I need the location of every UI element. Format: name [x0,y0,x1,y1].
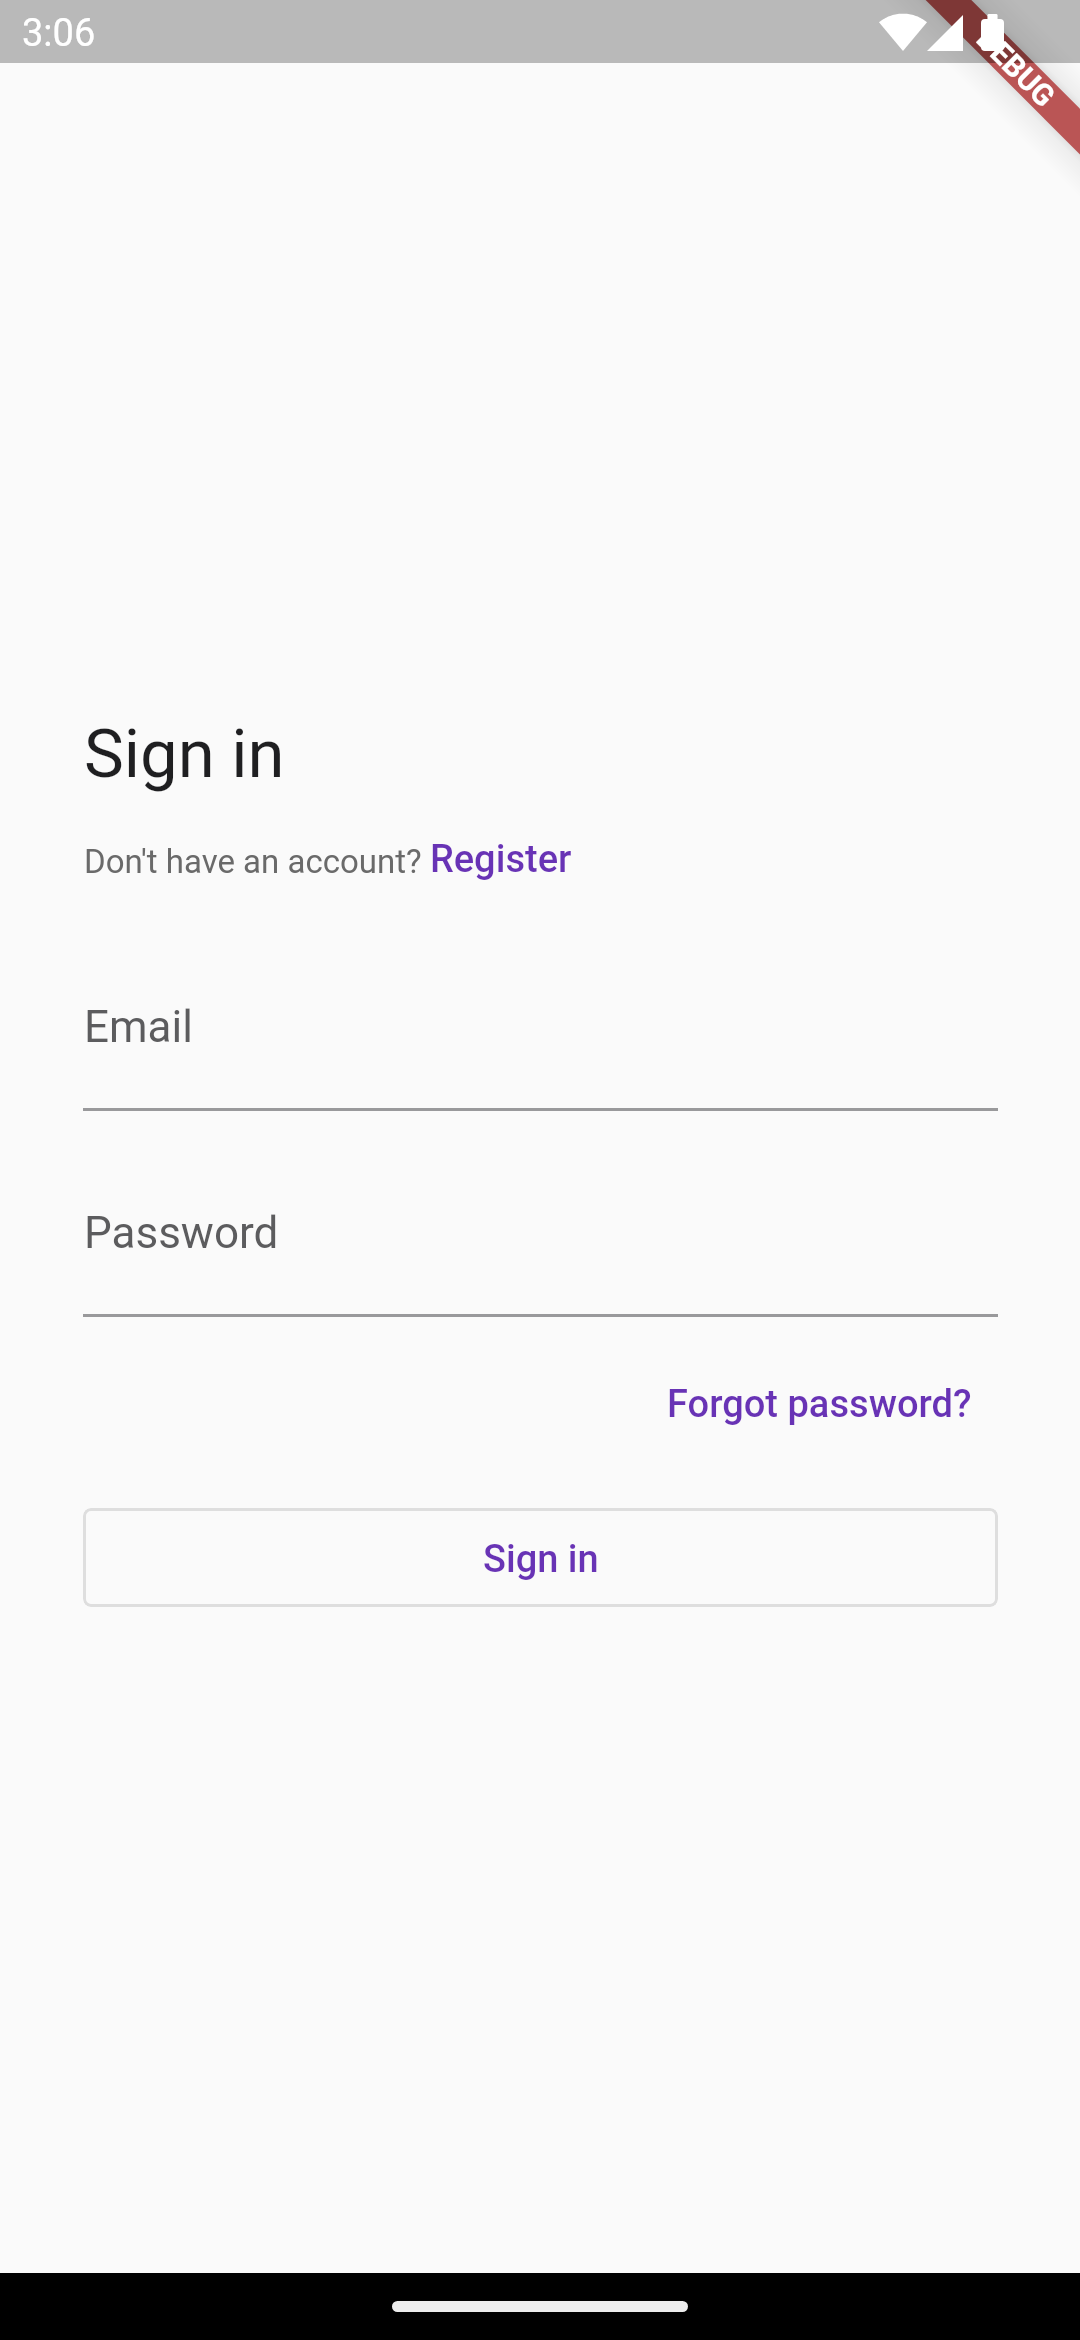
staticText: Sign in [84,715,285,794]
staticText: 3:06 [22,11,96,56]
button[interactable] [83,975,998,1112]
button[interactable]: Forgot password? [640,1358,998,1450]
button[interactable] [83,1181,998,1318]
staticText: Password [84,1207,279,1259]
staticText: Sign in [483,1537,599,1582]
staticText: Don't have an account? [84,842,430,881]
staticText: Register [430,837,572,882]
other: Wi-Fi signal [882,14,924,51]
button[interactable]: Register [430,837,572,882]
staticText: DEBUG [970,21,1062,114]
button[interactable]: Sign in [83,1508,998,1607]
staticText: Forgot password? [667,1382,972,1427]
other: Home [392,2301,688,2312]
other: Battery [981,14,1004,51]
staticText: Email [84,1001,193,1053]
other: Mobile signal [927,15,963,51]
